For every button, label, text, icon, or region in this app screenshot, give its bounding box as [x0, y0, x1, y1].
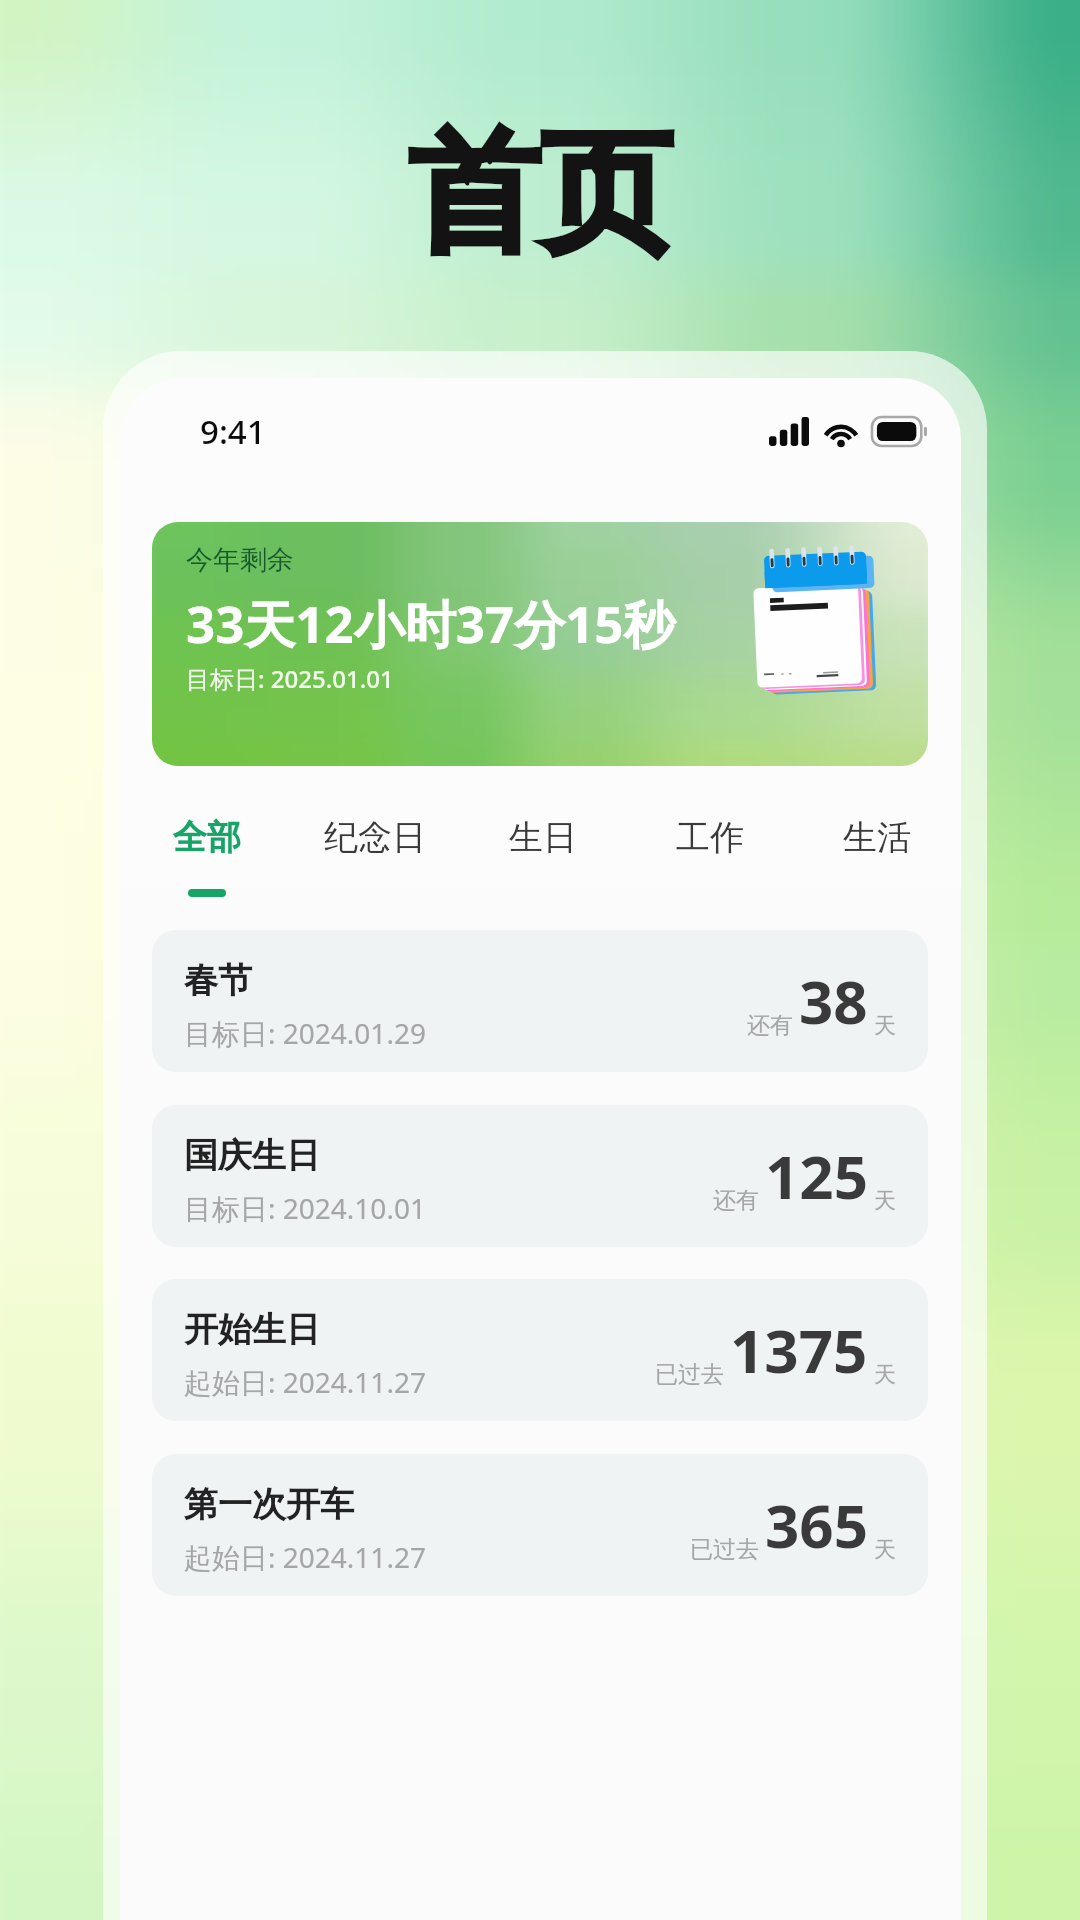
staticText: 起始日: 2024.11.27	[184, 1538, 426, 1576]
button[interactable]: 开始生日	[152, 1279, 928, 1421]
staticText: 天	[874, 1012, 896, 1040]
button[interactable]: 全部	[123, 816, 291, 905]
staticText: 已过去	[690, 1535, 759, 1564]
staticText: 天	[874, 1361, 896, 1389]
button[interactable]: 春节	[152, 930, 928, 1072]
staticText: 天	[874, 1187, 896, 1215]
button[interactable]: 生日	[459, 816, 626, 905]
staticText: 1375	[730, 1309, 868, 1391]
button[interactable]: 生活	[793, 816, 960, 905]
staticText: 今年剩余	[186, 543, 294, 577]
staticText: 天	[874, 1536, 896, 1564]
staticText: 首页	[408, 111, 672, 277]
staticText: 第一次开车	[184, 1483, 354, 1526]
staticText: 33天12小时37分15秒	[186, 588, 675, 658]
staticText: 生活	[843, 816, 911, 859]
staticText: 春节	[184, 959, 252, 1002]
staticText: 365	[765, 1484, 868, 1566]
staticText: 38	[799, 960, 868, 1042]
staticText: 目标日: 2025.01.01	[186, 662, 394, 695]
staticText: 目标日: 2024.01.29	[184, 1014, 426, 1052]
staticText: 生日	[509, 816, 577, 859]
staticText: 已过去	[655, 1360, 724, 1389]
staticText: 纪念日	[324, 816, 426, 859]
staticText: 125	[765, 1135, 868, 1217]
staticText: 目标日: 2024.10.01	[184, 1189, 426, 1227]
staticText: 开始生日	[184, 1308, 320, 1351]
staticText: 国庆生日	[184, 1134, 320, 1177]
button[interactable]: 工作	[626, 816, 793, 905]
button[interactable]: 今年剩余	[152, 522, 928, 766]
staticText: 9:41	[200, 409, 266, 454]
staticText: 还有	[713, 1186, 759, 1215]
staticText: 还有	[747, 1011, 793, 1040]
staticText: 起始日: 2024.11.27	[184, 1363, 426, 1401]
button[interactable]: 纪念日	[291, 816, 459, 905]
button[interactable]: 第一次开车	[152, 1454, 928, 1596]
staticText: 工作	[676, 816, 744, 859]
button[interactable]: 国庆生日	[152, 1105, 928, 1247]
staticText: 全部	[173, 816, 241, 859]
